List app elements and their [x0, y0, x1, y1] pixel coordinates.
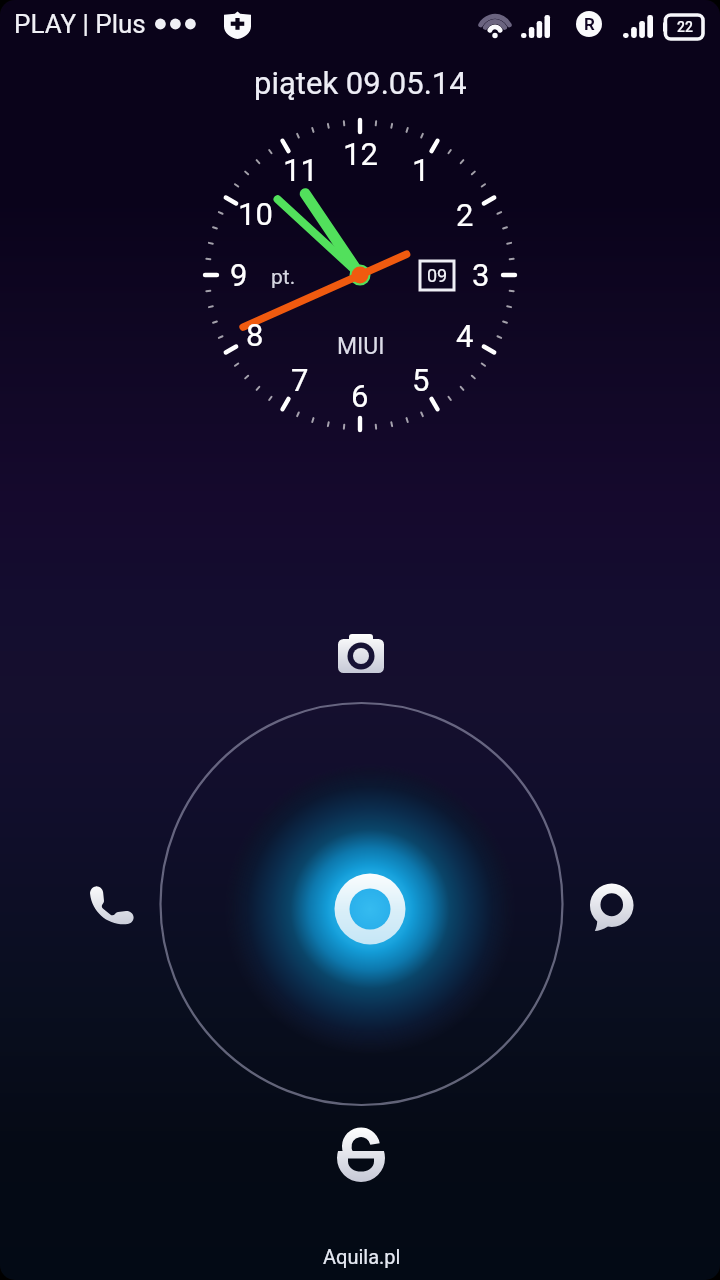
staticText: 1: [412, 152, 430, 188]
staticText: 6: [351, 378, 369, 414]
staticText: 11: [283, 152, 318, 188]
staticText: Aquila.pl: [323, 1245, 401, 1268]
staticText: 9: [230, 257, 248, 293]
button[interactable]: Camera: [338, 633, 384, 673]
staticText: 2: [456, 197, 474, 233]
staticText: 5: [412, 362, 430, 398]
staticText: PLAY | Plus: [14, 9, 146, 39]
button[interactable]: Phone: [87, 880, 137, 930]
staticText: 3: [472, 257, 490, 293]
button[interactable]: Messages: [587, 880, 636, 931]
staticText: MIUI: [337, 333, 385, 360]
staticText: R: [584, 14, 595, 34]
staticText: piątek 09.05.14: [254, 65, 467, 101]
staticText: 7: [291, 362, 309, 398]
staticText: 09: [427, 265, 448, 286]
staticText: 22: [677, 19, 693, 35]
button[interactable]: Unlock: [337, 1127, 385, 1182]
staticText: pt.: [271, 265, 296, 290]
staticText: 10: [238, 196, 273, 232]
staticText: 12: [343, 136, 378, 172]
staticText: 8: [246, 317, 264, 353]
staticText: 4: [456, 318, 474, 354]
